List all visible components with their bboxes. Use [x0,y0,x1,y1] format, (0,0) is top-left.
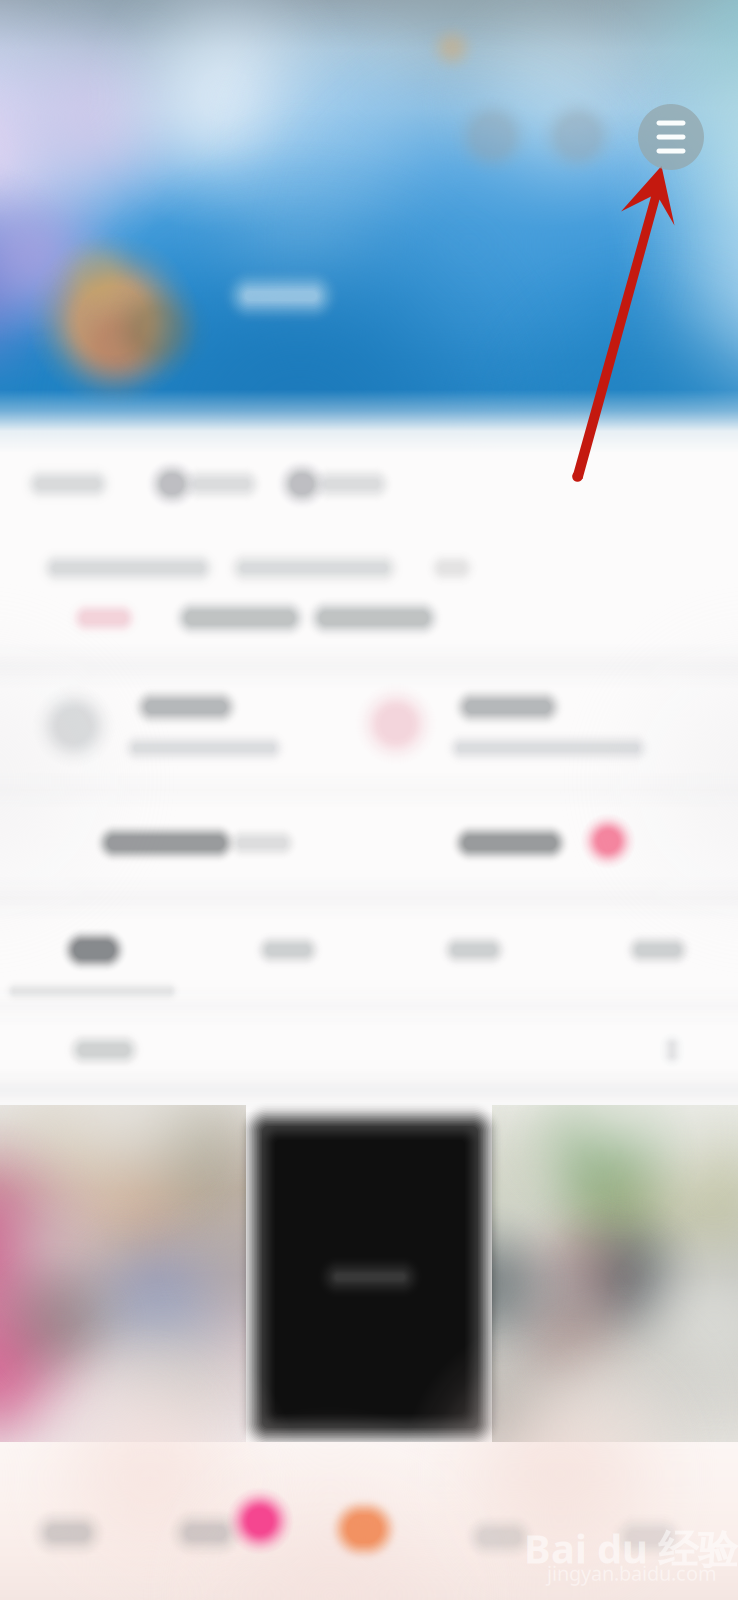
staticText: jingyan.baidu.com [547,1560,717,1586]
staticText: Bai du 经验 [524,1521,738,1575]
button[interactable]: Menu [638,104,704,170]
